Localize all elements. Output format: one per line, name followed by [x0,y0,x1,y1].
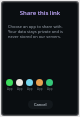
staticText: App [27,87,33,91]
staticText: Choose an app to share with. Your data s… [8,24,72,39]
button[interactable]: Share app [16,79,23,86]
staticText: App [7,87,13,91]
staticText: Cancel [34,102,47,107]
button[interactable]: Share app [46,79,53,86]
staticText: App [17,87,23,91]
button[interactable]: Cancel [34,102,47,107]
button[interactable]: Share app [6,79,13,86]
staticText: App [47,87,53,91]
staticText: App [37,87,43,91]
staticText: Share this link [3,9,77,17]
button[interactable]: Share app [26,79,33,86]
button[interactable]: Share app [36,79,43,86]
